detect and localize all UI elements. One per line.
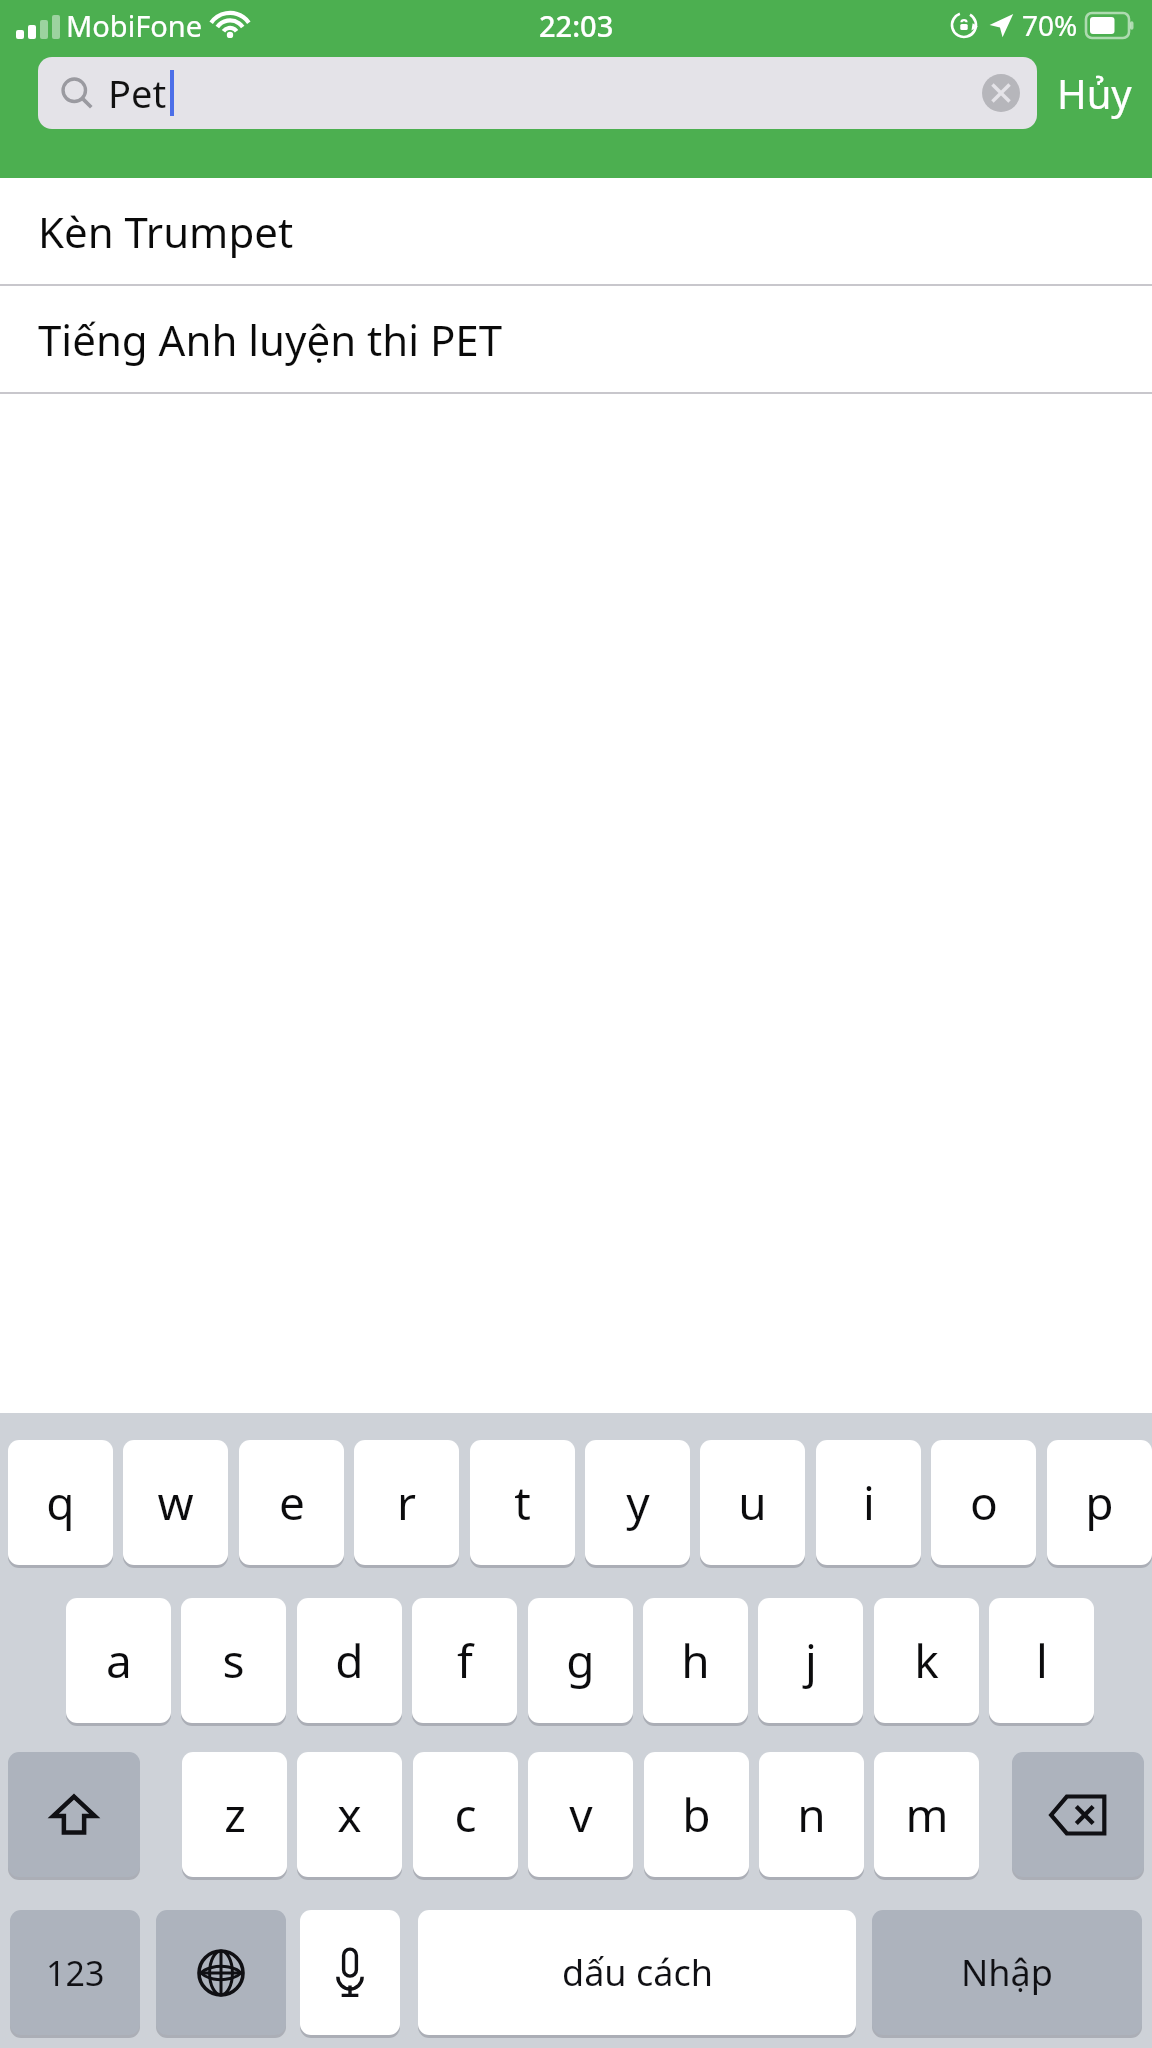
- staticText: m: [905, 1783, 949, 1846]
- button[interactable]: Nhập: [872, 1910, 1142, 2035]
- staticText: dấu cách: [562, 1948, 713, 1997]
- staticText: q: [46, 1471, 75, 1534]
- staticText: 22:03: [539, 6, 614, 45]
- staticText: z: [224, 1783, 246, 1846]
- button[interactable]: 123: [10, 1910, 140, 2035]
- button[interactable]: j: [758, 1598, 863, 1723]
- staticText: y: [626, 1471, 650, 1534]
- staticText: w: [157, 1471, 194, 1534]
- staticText: v: [569, 1783, 593, 1846]
- button[interactable]: o: [931, 1440, 1036, 1565]
- button[interactable]: m: [874, 1752, 979, 1877]
- staticText: k: [914, 1629, 939, 1692]
- staticText: h: [681, 1629, 710, 1692]
- button[interactable]: Tiếng Anh luyện thi PET: [0, 286, 1152, 392]
- button[interactable]: s: [181, 1598, 286, 1723]
- button[interactable]: w: [123, 1440, 228, 1565]
- button[interactable]: n: [759, 1752, 864, 1877]
- button[interactable]: q: [8, 1440, 113, 1565]
- button[interactable]: Hủy: [1037, 57, 1152, 129]
- staticText: n: [797, 1783, 826, 1846]
- button[interactable]: c: [413, 1752, 518, 1877]
- staticText: Kèn Trumpet: [38, 203, 294, 260]
- staticText: f: [457, 1629, 473, 1692]
- button[interactable]: h: [643, 1598, 748, 1723]
- button[interactable]: z: [182, 1752, 287, 1877]
- button[interactable]: x: [297, 1752, 402, 1877]
- staticText: e: [279, 1471, 305, 1534]
- button[interactable]: r: [354, 1440, 459, 1565]
- staticText: j: [805, 1629, 817, 1692]
- staticText: u: [738, 1471, 767, 1534]
- staticText: g: [566, 1629, 595, 1692]
- button[interactable]: Backspace: [1012, 1752, 1144, 1877]
- button[interactable]: Pet: [38, 57, 1037, 129]
- staticText: r: [397, 1471, 416, 1534]
- staticText: p: [1085, 1471, 1114, 1534]
- button[interactable]: v: [528, 1752, 633, 1877]
- button[interactable]: Change keyboard: [156, 1910, 286, 2035]
- staticText: s: [222, 1629, 245, 1692]
- staticText: a: [106, 1629, 132, 1692]
- staticText: x: [337, 1783, 362, 1846]
- button[interactable]: Kèn Trumpet: [0, 178, 1152, 284]
- button[interactable]: u: [700, 1440, 805, 1565]
- staticText: Pet: [108, 67, 167, 119]
- button[interactable]: y: [585, 1440, 690, 1565]
- button[interactable]: p: [1047, 1440, 1152, 1565]
- button[interactable]: e: [239, 1440, 344, 1565]
- button[interactable]: b: [644, 1752, 749, 1877]
- button[interactable]: f: [412, 1598, 517, 1723]
- staticText: t: [514, 1471, 531, 1534]
- button[interactable]: d: [297, 1598, 402, 1723]
- button[interactable]: Clear text: [973, 65, 1029, 121]
- staticText: l: [1036, 1629, 1048, 1692]
- button[interactable]: l: [989, 1598, 1094, 1723]
- staticText: 70%: [1022, 6, 1078, 44]
- button[interactable]: i: [816, 1440, 921, 1565]
- staticText: Tiếng Anh luyện thi PET: [38, 311, 503, 368]
- staticText: o: [970, 1471, 998, 1534]
- button[interactable]: [8, 1752, 140, 1877]
- button[interactable]: a: [66, 1598, 171, 1723]
- staticText: c: [454, 1783, 477, 1846]
- staticText: MobiFone: [66, 6, 203, 45]
- staticText: b: [682, 1783, 711, 1846]
- button[interactable]: t: [470, 1440, 575, 1565]
- button[interactable]: g: [528, 1598, 633, 1723]
- staticText: Hủy: [1057, 66, 1132, 120]
- staticText: i: [863, 1471, 875, 1534]
- button[interactable]: k: [874, 1598, 979, 1723]
- button[interactable]: Dictate: [300, 1910, 400, 2035]
- staticText: 123: [46, 1950, 105, 1996]
- staticText: Nhập: [961, 1948, 1053, 1997]
- button[interactable]: dấu cách: [418, 1910, 856, 2035]
- staticText: d: [335, 1629, 364, 1692]
